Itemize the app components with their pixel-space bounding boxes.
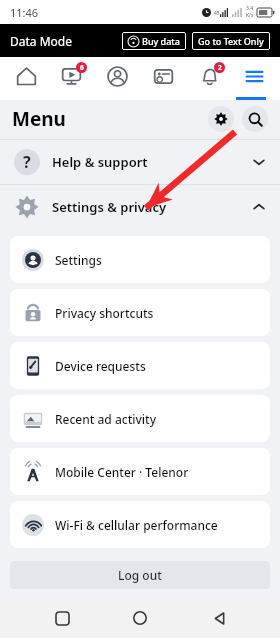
staticText: Log out — [118, 567, 162, 583]
button[interactable]: Settings — [208, 106, 234, 132]
staticText: Go to Text Only — [198, 35, 264, 47]
staticText: Mobile Center · Telenor — [55, 464, 189, 480]
button[interactable]: Buy data — [122, 32, 186, 50]
button[interactable]: Recent apps — [45, 601, 79, 635]
staticText: 3.4 — [246, 5, 254, 12]
staticText: Settings — [55, 252, 102, 268]
button[interactable]: Mobile Center · Telenor — [10, 448, 270, 495]
staticText: 11:46 — [10, 5, 39, 20]
staticText: Recent ad activity — [55, 411, 157, 427]
button[interactable]: Go to Text Only — [192, 32, 270, 50]
staticText: Privacy shortcuts — [55, 305, 154, 321]
staticText: ? — [23, 151, 31, 173]
staticText: Device requests — [55, 358, 146, 374]
staticText: Help & support — [52, 153, 148, 171]
staticText: K/s — [246, 12, 254, 19]
button[interactable]: Video — [51, 57, 91, 100]
staticText: 2 — [218, 63, 222, 72]
button[interactable]: Home — [6, 57, 46, 100]
staticText: Wi-Fi & cellular performance — [55, 517, 218, 533]
staticText: Data Mode — [10, 33, 72, 49]
staticText: Settings & privacy — [52, 198, 167, 216]
staticText: 6 — [80, 63, 84, 72]
button[interactable]: Log out — [10, 561, 270, 589]
button[interactable]: Wi-Fi & cellular performance — [10, 501, 270, 548]
button[interactable]: Recent ad activity — [10, 395, 270, 442]
staticText: Menu — [12, 106, 66, 132]
button[interactable]: Profile — [97, 57, 137, 100]
button[interactable]: Settings — [10, 236, 270, 283]
button[interactable]: Notifications — [189, 57, 229, 100]
button[interactable]: Search — [242, 106, 268, 132]
button[interactable]: Settings & privacy — [0, 185, 280, 229]
staticText: Buy data — [142, 35, 180, 47]
staticText: 45 — [214, 10, 220, 17]
button[interactable]: Home — [123, 601, 157, 635]
button[interactable]: ? — [0, 140, 280, 184]
button[interactable]: Marketplace — [143, 57, 183, 100]
button[interactable]: Device requests — [10, 342, 270, 389]
button[interactable]: Menu — [234, 57, 274, 100]
button[interactable]: Privacy shortcuts — [10, 289, 270, 336]
button[interactable]: Back — [202, 601, 236, 635]
